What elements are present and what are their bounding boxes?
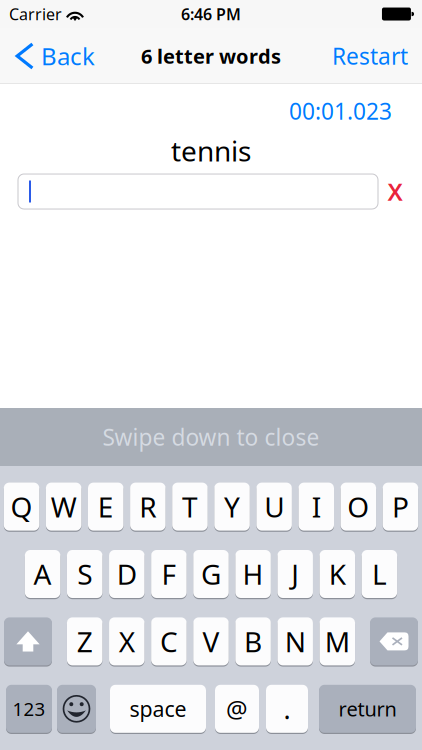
button[interactable]: P (383, 482, 418, 531)
button[interactable]: T (172, 482, 208, 531)
button[interactable]: Q (4, 482, 39, 531)
button[interactable]: Y (214, 482, 250, 531)
button[interactable]: . (266, 684, 308, 733)
staticText: N (285, 623, 306, 660)
button[interactable]: Swipe down to close (0, 408, 422, 466)
staticText: A (34, 555, 52, 593)
button[interactable]: @ (215, 684, 259, 733)
button[interactable]: S (67, 549, 102, 599)
button[interactable]: C (151, 617, 187, 666)
staticText: return (338, 695, 396, 722)
staticText: I (312, 488, 321, 525)
staticText: P (392, 488, 409, 525)
button[interactable]: K (319, 549, 355, 599)
button[interactable]: N (277, 617, 313, 666)
button[interactable]: Z (67, 617, 102, 666)
button[interactable]: G (193, 549, 229, 599)
button[interactable]: J (277, 549, 313, 599)
staticText: D (117, 555, 137, 593)
staticText: F (161, 555, 176, 593)
staticText: tennis (171, 132, 251, 169)
staticText: O (347, 488, 369, 525)
staticText: @ (226, 693, 248, 725)
staticText: Q (11, 488, 33, 525)
staticText: W (51, 488, 77, 525)
staticText: space (129, 695, 186, 723)
button[interactable]: X (109, 617, 144, 666)
staticText: X (119, 623, 135, 660)
staticText: Y (224, 488, 240, 525)
button[interactable]: Back (0, 28, 105, 84)
staticText: 00:01.023 (289, 96, 392, 126)
staticText: T (182, 488, 198, 525)
staticText: L (372, 555, 387, 593)
staticText: R (139, 488, 156, 525)
staticText: Swipe down to close (102, 422, 319, 452)
button[interactable]: 123 (6, 684, 52, 733)
button[interactable]: return (319, 684, 416, 733)
staticText: G (201, 555, 221, 593)
button[interactable]: Emoji keyboard (57, 684, 96, 733)
staticText: V (202, 623, 219, 660)
staticText: Carrier (9, 3, 62, 25)
button[interactable]: V (193, 617, 229, 666)
staticText: S (77, 555, 92, 593)
button[interactable]: M (319, 617, 355, 666)
button[interactable]: U (256, 482, 292, 531)
staticText: K (329, 555, 346, 593)
button[interactable]: Restart (318, 28, 422, 84)
button[interactable]: W (46, 482, 81, 531)
button[interactable]: A (25, 549, 60, 599)
staticText: E (98, 488, 114, 525)
button[interactable]: E (88, 482, 123, 531)
staticText: Restart (332, 41, 408, 71)
staticText: Back (41, 40, 95, 72)
button[interactable]: space (110, 684, 206, 733)
button[interactable]: H (235, 549, 271, 599)
button[interactable]: O (341, 482, 376, 531)
staticText: U (264, 488, 284, 525)
button[interactable]: F (151, 549, 187, 599)
staticText: M (325, 623, 350, 660)
staticText: H (243, 555, 264, 593)
button[interactable]: L (362, 549, 397, 599)
button[interactable]: Delete (370, 617, 418, 666)
staticText: 6:46 PM (181, 3, 241, 25)
button[interactable]: Clear (378, 174, 412, 209)
button[interactable]: Shift (4, 617, 52, 666)
button[interactable]: B (235, 617, 271, 666)
staticText: C (160, 623, 178, 660)
staticText: Z (77, 623, 93, 660)
staticText: 6 letter words (141, 43, 281, 69)
staticText: J (291, 555, 299, 593)
staticText: 123 (12, 696, 45, 721)
button[interactable]: I (298, 482, 334, 531)
staticText: X (387, 176, 402, 207)
staticText: . (283, 691, 290, 726)
button[interactable]: R (130, 482, 166, 531)
staticText: B (244, 623, 262, 660)
button[interactable]: D (109, 549, 144, 599)
